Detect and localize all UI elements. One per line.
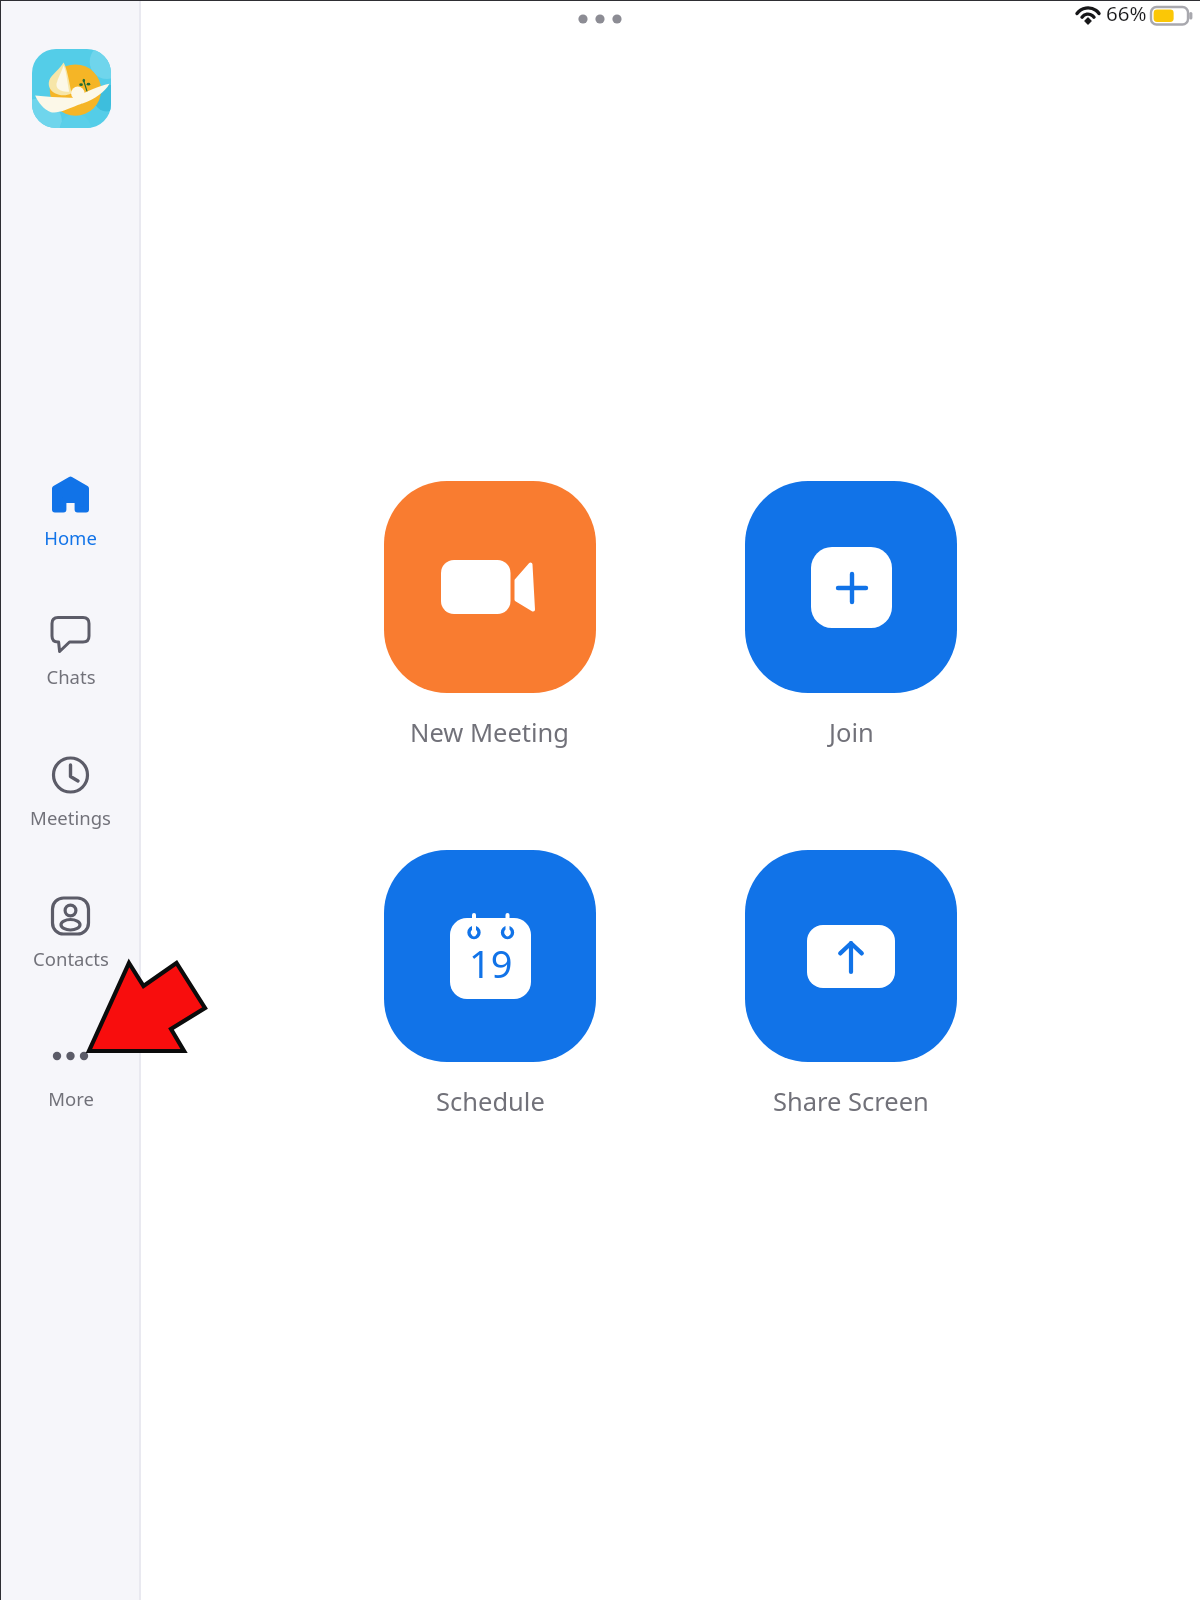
- button[interactable]: New Meeting: [324, 481, 656, 750]
- button[interactable]: Share Screen: [685, 850, 1017, 1119]
- staticText: Meetings: [30, 805, 111, 830]
- staticText: New Meeting: [410, 715, 570, 750]
- staticText: More: [48, 1086, 94, 1111]
- button[interactable]: App icon: [32, 49, 111, 128]
- staticText: Schedule: [436, 1084, 545, 1119]
- button[interactable]: Chats: [4, 588, 137, 700]
- button[interactable]: Join: [685, 481, 1017, 750]
- staticText: Contacts: [33, 946, 109, 971]
- staticText: Share Screen: [773, 1084, 929, 1119]
- staticText: 66%: [1106, 0, 1147, 27]
- staticText: 19: [469, 937, 513, 989]
- button[interactable]: 19: [324, 850, 656, 1119]
- staticText: Home: [44, 525, 97, 550]
- button[interactable]: Home: [4, 449, 137, 561]
- button[interactable]: Multitasking options: [560, 4, 640, 34]
- button[interactable]: Meetings: [4, 729, 137, 841]
- button[interactable]: More: [4, 1010, 137, 1122]
- staticText: Join: [829, 715, 874, 750]
- button[interactable]: Contacts: [4, 870, 137, 982]
- staticText: Chats: [46, 664, 96, 689]
